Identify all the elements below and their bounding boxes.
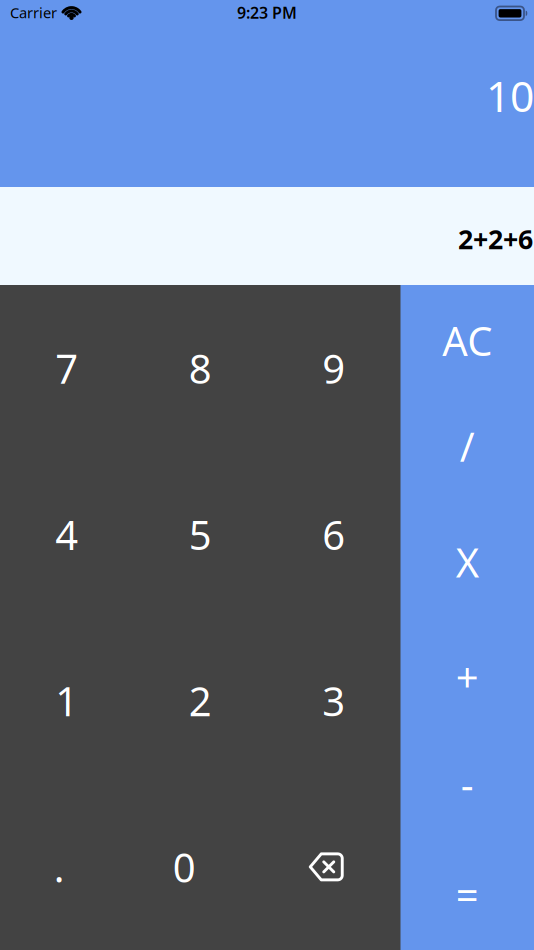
staticText: 8 [189, 342, 212, 395]
button[interactable] [267, 784, 400, 950]
staticText: 5 [189, 508, 212, 561]
staticText: 7 [55, 342, 78, 395]
button[interactable]: 9 [267, 285, 400, 451]
button[interactable]: 5 [133, 451, 267, 617]
staticText: = [456, 868, 479, 921]
button[interactable]: 1 [0, 617, 133, 784]
button[interactable]: 8 [133, 285, 267, 451]
staticText: 9:23 PM [237, 2, 297, 23]
staticText: - [461, 757, 474, 810]
staticText: AC [442, 314, 492, 367]
button[interactable]: 4 [0, 451, 133, 617]
staticText: 6 [322, 508, 345, 561]
staticText: 2 [189, 674, 212, 727]
staticText: 9 [322, 342, 345, 395]
staticText: 2+2+6 [458, 221, 533, 257]
button[interactable]: 6 [267, 451, 400, 617]
button[interactable]: - [400, 728, 534, 839]
staticText: 4 [55, 508, 78, 561]
staticText: 3 [322, 674, 345, 727]
staticText: 1 [55, 674, 78, 727]
button[interactable]: 2 [133, 617, 267, 784]
staticText: 0 [173, 840, 196, 893]
staticText: Carrier [10, 3, 57, 22]
button[interactable]: 3 [267, 617, 400, 784]
staticText: 10 [486, 67, 534, 124]
button[interactable]: / [400, 396, 534, 507]
button[interactable]: 7 [0, 285, 133, 451]
staticText: / [460, 420, 475, 473]
staticText: + [456, 649, 479, 702]
button[interactable]: X [400, 507, 534, 617]
button[interactable]: = [400, 839, 534, 950]
staticText: X [456, 535, 479, 589]
button[interactable]: + [400, 617, 534, 728]
button[interactable]: 0 [133, 784, 267, 950]
button[interactable]: AC [400, 285, 534, 396]
staticText: . [54, 840, 65, 893]
button[interactable]: . [0, 784, 133, 950]
